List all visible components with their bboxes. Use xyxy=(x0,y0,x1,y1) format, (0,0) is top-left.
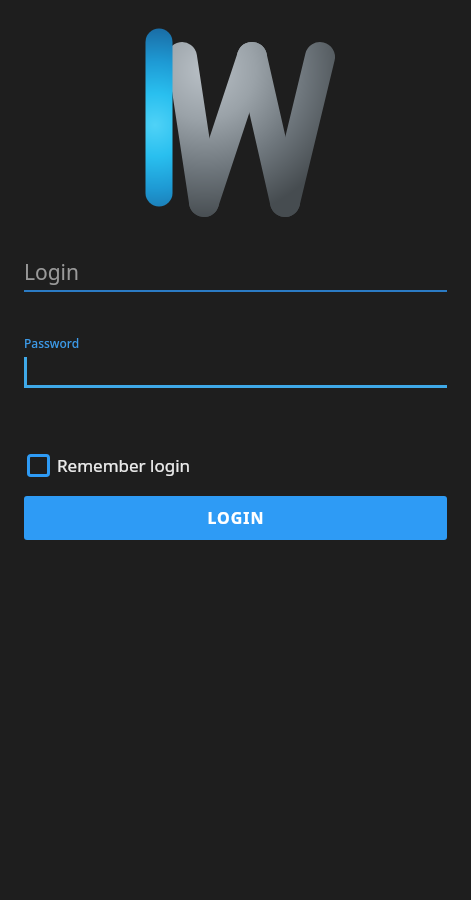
button[interactable]: Remember login xyxy=(24,452,191,479)
button[interactable]: Password xyxy=(24,335,447,388)
staticText: Password xyxy=(24,335,80,351)
staticText: Login xyxy=(24,258,80,287)
button[interactable]: LOGIN xyxy=(24,496,447,540)
staticText: Remember login xyxy=(57,454,191,477)
staticText: LOGIN xyxy=(207,507,265,529)
button[interactable]: Login xyxy=(24,255,447,292)
